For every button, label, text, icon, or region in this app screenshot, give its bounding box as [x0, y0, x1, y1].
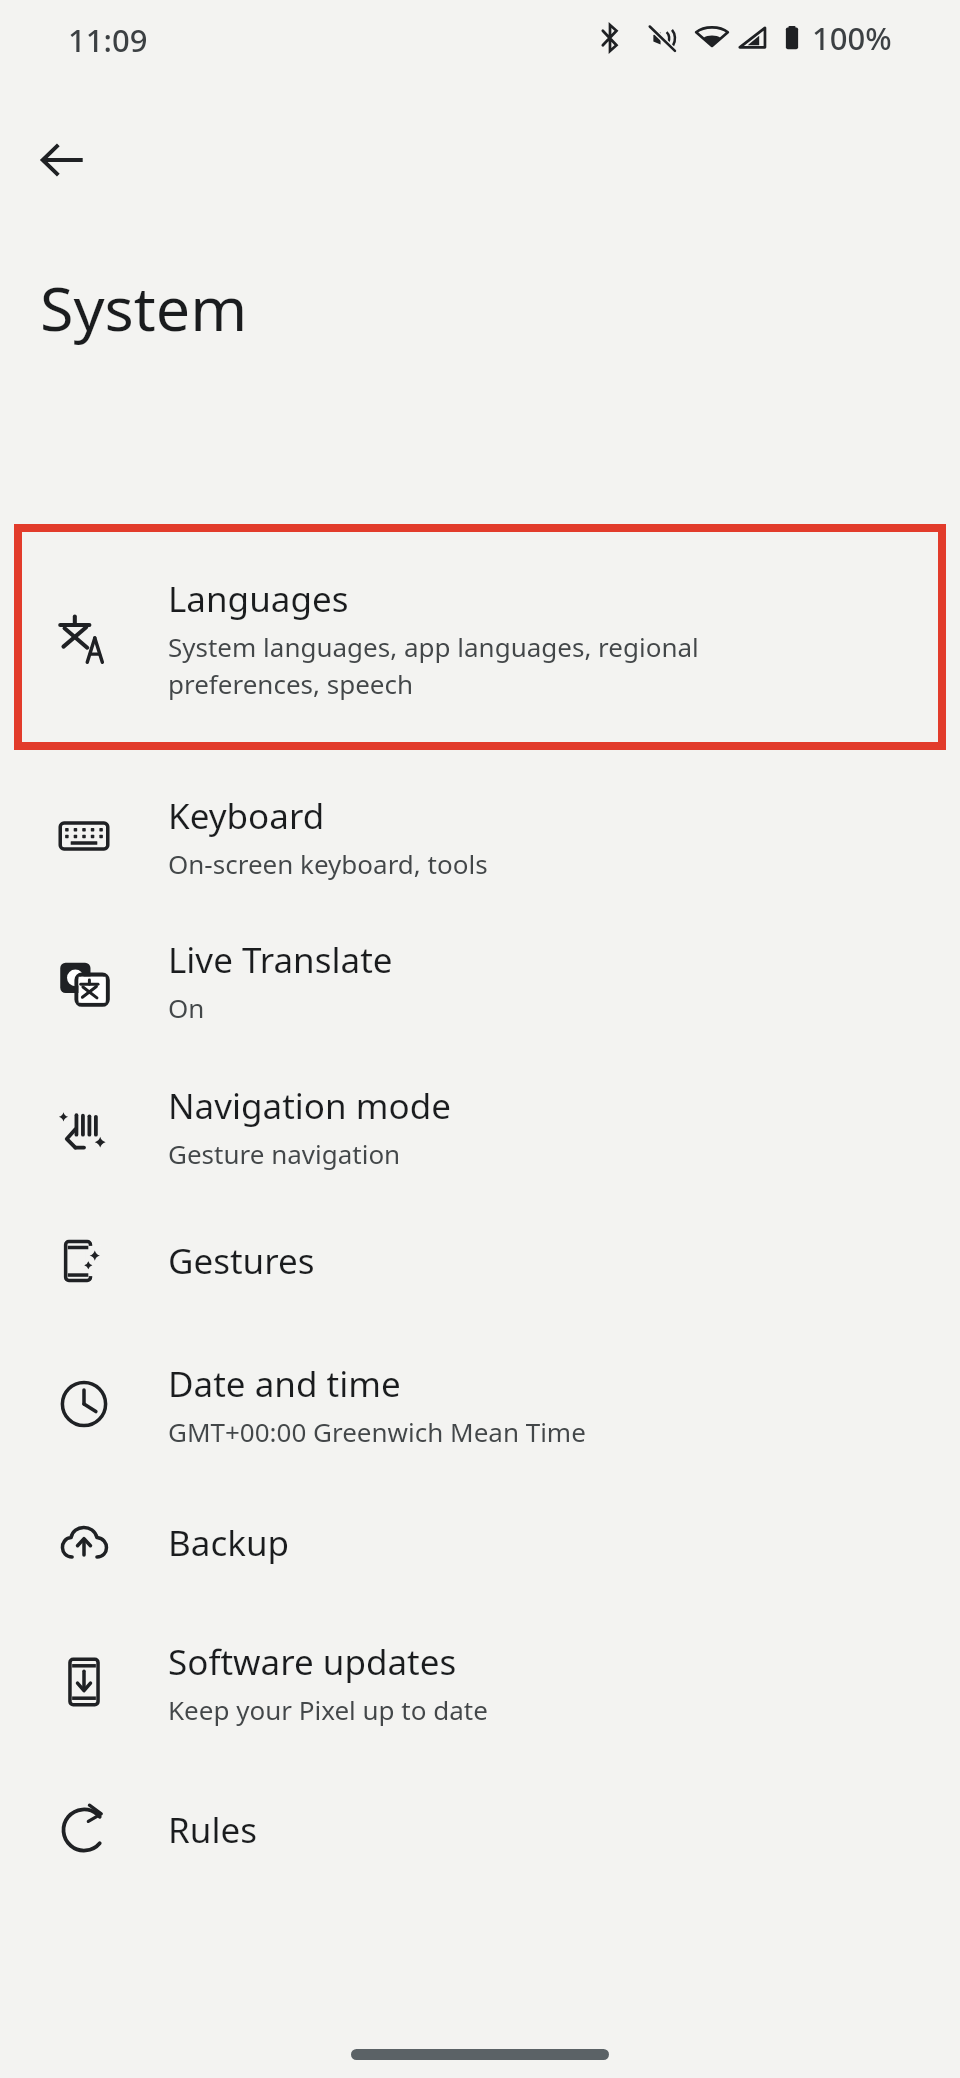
- button[interactable]: Keyboard: [0, 762, 960, 910]
- staticText: On: [168, 990, 205, 1025]
- button[interactable]: Backup: [0, 1482, 960, 1604]
- staticText: Live Translate: [168, 936, 393, 984]
- staticText: System languages, app languages, regiona…: [168, 629, 699, 664]
- staticText: Rules: [168, 1806, 257, 1854]
- button[interactable]: Date and time: [0, 1330, 960, 1478]
- staticText: Software updates: [168, 1638, 457, 1686]
- button[interactable]: Rules: [0, 1760, 960, 1900]
- staticText: GMT+00:00 Greenwich Mean Time: [168, 1414, 586, 1449]
- staticText: Keep your Pixel up to date: [168, 1692, 488, 1727]
- staticText: Languages: [168, 575, 349, 623]
- button[interactable]: Back: [16, 114, 108, 206]
- button[interactable]: Gestures: [0, 1200, 960, 1322]
- button[interactable]: Navigation mode: [0, 1052, 960, 1200]
- button[interactable]: Software updates: [0, 1608, 960, 1756]
- staticText: preferences, speech: [168, 666, 414, 701]
- staticText: Gesture navigation: [168, 1136, 401, 1171]
- staticText: Keyboard: [168, 792, 325, 840]
- button[interactable]: Live Translate: [0, 906, 960, 1054]
- staticText: Navigation mode: [168, 1082, 451, 1130]
- staticText: System: [40, 266, 248, 349]
- staticText: On-screen keyboard, tools: [168, 846, 488, 881]
- staticText: Backup: [168, 1519, 290, 1567]
- staticText: Date and time: [168, 1360, 401, 1408]
- staticText: 11:09: [68, 19, 148, 61]
- button[interactable]: Languages: [0, 526, 960, 750]
- staticText: Gestures: [168, 1237, 315, 1285]
- staticText: 100%: [812, 17, 892, 59]
